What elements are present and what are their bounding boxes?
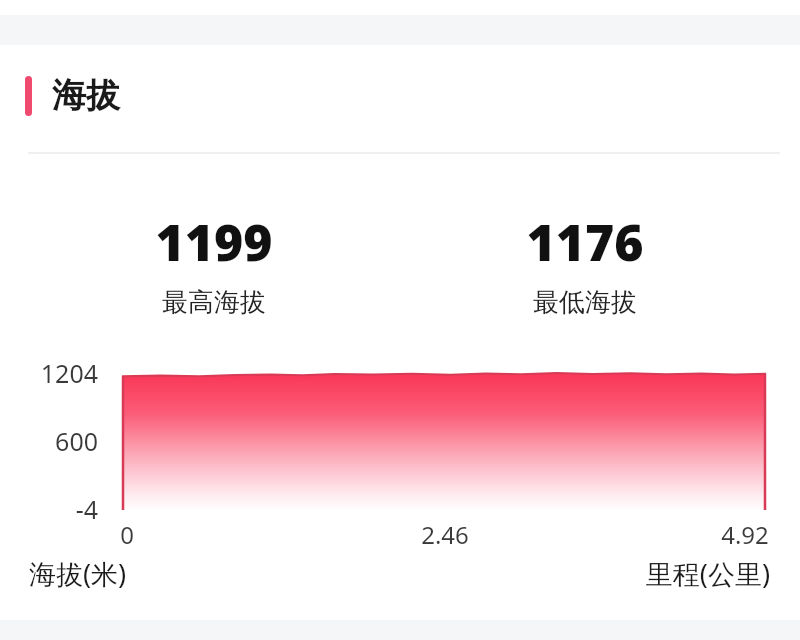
staticText: 4.92 <box>705 518 785 551</box>
staticText: 最低海拔 <box>455 286 715 319</box>
staticText: 海拔(米) <box>29 555 127 592</box>
staticText: 里程(公里) <box>560 555 770 592</box>
staticText: 600 <box>55 424 98 456</box>
staticText: 1204 <box>40 356 98 388</box>
staticText: 0 <box>112 518 142 551</box>
button[interactable]: 1199 <box>84 208 344 319</box>
button[interactable]: 海拔 <box>25 74 120 117</box>
staticText: 1199 <box>84 208 344 276</box>
staticText: 2.46 <box>405 518 485 551</box>
button[interactable]: 1176 <box>455 208 715 319</box>
staticText: -4 <box>75 492 98 524</box>
staticText: 海拔 <box>52 74 120 117</box>
staticText: 最高海拔 <box>84 286 344 319</box>
button[interactable]: Elevation profile chart <box>122 372 766 510</box>
staticText: 1176 <box>455 208 715 276</box>
